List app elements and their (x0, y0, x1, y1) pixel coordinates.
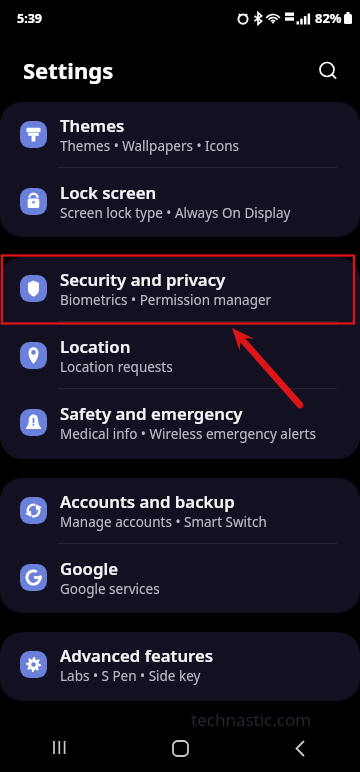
button[interactable]: Safety and emergency (0, 391, 360, 458)
staticText: Medical info • Wireless emergency alerts (60, 425, 316, 443)
staticText: Accounts and backup (60, 490, 235, 513)
staticText: Screen lock type • Always On Display (60, 204, 291, 222)
staticText: Security and privacy (60, 268, 226, 291)
staticText: 5:39 (17, 10, 42, 27)
button[interactable]: Search (311, 54, 345, 88)
button[interactable]: Advanced features (0, 632, 360, 701)
button[interactable]: Accounts and backup (0, 478, 360, 546)
button[interactable]: Security and privacy (0, 257, 360, 324)
staticText: Biometrics • Permission manager (60, 291, 272, 309)
staticText: technastic.com (191, 708, 312, 731)
staticText: Safety and emergency (60, 402, 243, 425)
staticText: Themes • Wallpapers • Icons (60, 137, 240, 155)
staticText: Themes (60, 114, 125, 137)
staticText: Google (60, 557, 119, 580)
button[interactable]: Google (0, 546, 360, 613)
staticText: Labs • S Pen • Side key (60, 667, 201, 685)
staticText: Settings (23, 55, 114, 85)
button[interactable]: Back (240, 724, 360, 772)
staticText: 82% (315, 9, 342, 27)
button[interactable]: Lock screen (0, 170, 360, 237)
button[interactable]: Home (120, 724, 240, 772)
staticText: Manage accounts • Smart Switch (60, 513, 267, 531)
staticText: Location (60, 335, 131, 358)
button[interactable]: Recents (0, 724, 120, 772)
staticText: Location requests (60, 358, 173, 376)
staticText: Advanced features (60, 644, 214, 667)
button[interactable]: Location (0, 324, 360, 391)
staticText: Lock screen (60, 181, 157, 204)
staticText: Google services (60, 580, 160, 598)
button[interactable]: Themes (0, 102, 360, 170)
